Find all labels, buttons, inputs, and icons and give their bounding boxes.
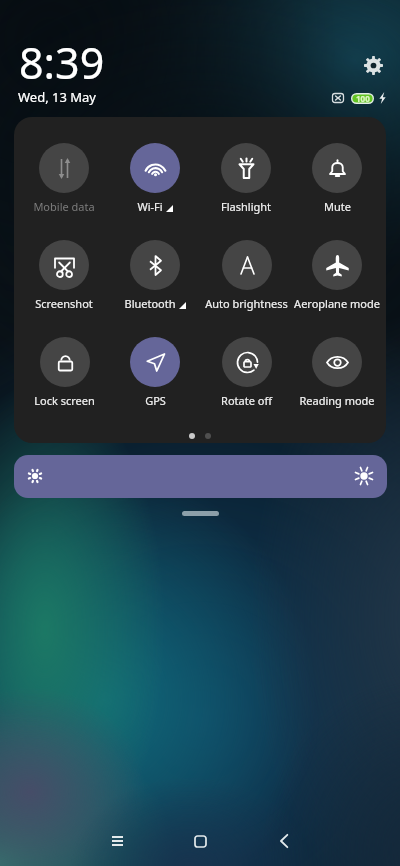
button[interactable]: Flashlight <box>201 143 291 217</box>
staticText: Wi-Fi <box>137 199 163 214</box>
button[interactable]: Home <box>178 819 222 863</box>
button[interactable]: Wi-Fi <box>110 143 200 217</box>
staticText: Reading mode <box>299 393 375 408</box>
staticText: Rotate off <box>221 393 272 408</box>
staticText: Aeroplane mode <box>294 296 380 311</box>
button[interactable]: Mute <box>292 143 382 217</box>
button[interactable]: GPS <box>110 337 200 411</box>
button[interactable]: Bluetooth <box>110 240 200 314</box>
staticText: Bluetooth <box>124 296 176 311</box>
button[interactable]: Brightness <box>14 455 387 498</box>
staticText: Auto brightness <box>205 296 288 311</box>
button[interactable]: Back <box>262 819 306 863</box>
staticText: Mobile data <box>33 199 95 214</box>
button[interactable]: Reading mode <box>292 337 382 411</box>
staticText: Wed, 13 May <box>18 88 96 106</box>
button[interactable]: Screenshot <box>19 240 109 314</box>
staticText: Mute <box>324 199 351 214</box>
staticText: Screenshot <box>35 296 93 311</box>
button[interactable]: Recents <box>95 819 139 863</box>
staticText: Flashlight <box>221 199 271 214</box>
button[interactable]: Mobile data <box>19 143 109 217</box>
button[interactable]: Lock screen <box>19 337 109 411</box>
button[interactable]: Aeroplane mode <box>292 240 382 314</box>
staticText: 8:39 <box>19 33 105 92</box>
button[interactable]: Rotate off <box>201 337 291 411</box>
staticText: Lock screen <box>34 393 95 408</box>
button[interactable]: Auto brightness <box>201 240 291 314</box>
button[interactable]: Settings <box>358 50 388 80</box>
staticText: GPS <box>145 393 166 408</box>
staticText: 100 <box>356 93 370 104</box>
